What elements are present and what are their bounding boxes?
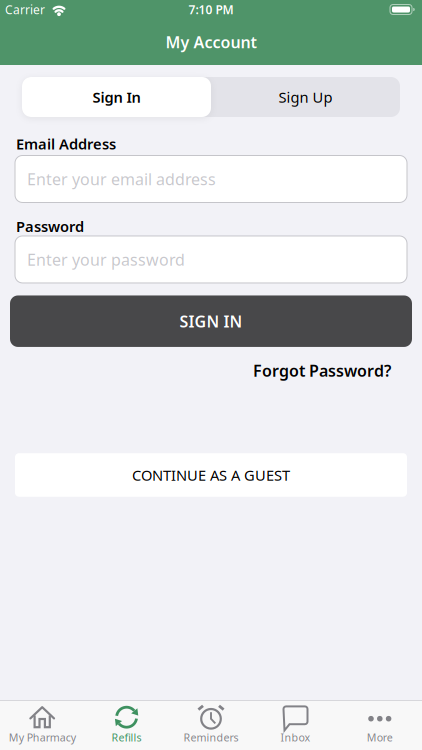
button[interactable]: CONTINUE AS A GUEST	[15, 453, 407, 497]
staticText: Forgot Password?	[253, 360, 391, 381]
button[interactable]: Enter your email address	[15, 155, 407, 202]
staticText: Refills	[112, 730, 142, 744]
button[interactable]: Forgot Password?	[253, 360, 391, 381]
staticText: Sign Up	[278, 87, 332, 107]
staticText: My Pharmacy	[9, 730, 76, 744]
staticText: 7:10 PM	[188, 1, 233, 17]
staticText: Email Address	[16, 134, 116, 153]
staticText: Carrier	[5, 1, 45, 17]
staticText: CONTINUE AS A GUEST	[132, 465, 290, 485]
button[interactable]: More	[338, 701, 422, 750]
staticText: Password	[16, 216, 84, 236]
staticText: More	[367, 730, 393, 744]
staticText: SIGN IN	[179, 311, 242, 332]
button[interactable]: Sign Up	[211, 77, 400, 117]
staticText: Enter your email address	[27, 168, 216, 190]
button[interactable]: Inbox	[253, 701, 338, 750]
button[interactable]: Refills	[84, 701, 169, 750]
staticText: Enter your password	[27, 249, 185, 270]
button[interactable]: Sign In	[22, 77, 211, 117]
button[interactable]: SIGN IN	[10, 295, 412, 347]
staticText: Sign In	[92, 87, 140, 107]
staticText: Reminders	[183, 730, 238, 744]
staticText: Inbox	[280, 730, 310, 744]
button[interactable]: My Pharmacy	[0, 701, 84, 750]
button[interactable]: Reminders	[169, 701, 253, 750]
button[interactable]: Enter your password	[15, 236, 407, 283]
staticText: My Account	[165, 31, 256, 53]
